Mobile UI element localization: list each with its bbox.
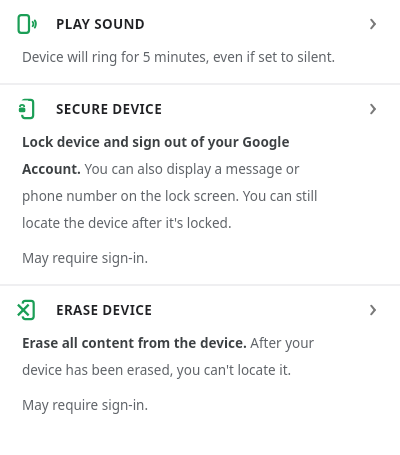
- button[interactable]: SECURE DEVICE: [0, 85, 400, 133]
- staticText: May require sign-in.: [22, 396, 149, 414]
- button[interactable]: ERASE DEVICE: [0, 286, 400, 334]
- staticText: Device will ring for 5 minutes, even if …: [22, 48, 336, 66]
- staticText: May require sign-in.: [22, 249, 149, 267]
- button[interactable]: PLAY SOUND: [0, 0, 400, 48]
- staticText: SECURE DEVICE: [56, 100, 163, 118]
- staticText: Lock device and sign out of your Google …: [22, 133, 340, 232]
- staticText: ERASE DEVICE: [56, 301, 153, 319]
- button[interactable]: PLAY SOUND: [360, 11, 386, 37]
- button[interactable]: ERASE DEVICE: [0, 286, 400, 428]
- staticText: PLAY SOUND: [56, 15, 146, 33]
- staticText: Erase all content from the device. After…: [22, 334, 340, 379]
- button[interactable]: SECURE DEVICE: [360, 96, 386, 122]
- button[interactable]: ERASE DEVICE: [360, 297, 386, 323]
- button[interactable]: SECURE DEVICE: [0, 85, 400, 284]
- button[interactable]: PLAY SOUND: [0, 0, 400, 83]
